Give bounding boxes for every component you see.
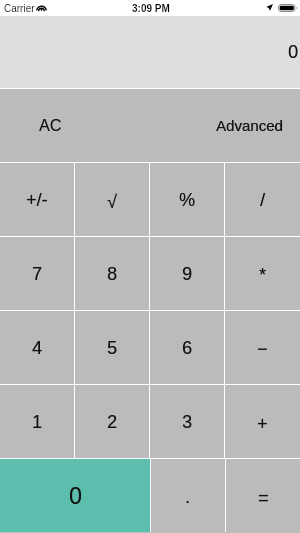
button[interactable]: %	[150, 163, 224, 236]
staticText: 0	[288, 42, 299, 62]
staticText: 6	[182, 338, 193, 358]
staticText: √	[107, 192, 117, 212]
staticText: 7	[32, 264, 43, 284]
button[interactable]: =	[226, 459, 300, 532]
staticText: Carrier	[4, 3, 35, 14]
button[interactable]: +	[225, 385, 300, 458]
button[interactable]: 3	[150, 385, 224, 458]
button[interactable]: /	[225, 163, 300, 236]
button[interactable]: −	[225, 311, 300, 384]
staticText: 5	[107, 338, 118, 358]
staticText: AC	[39, 117, 62, 135]
staticText: =	[258, 488, 269, 508]
staticText: 3	[182, 412, 193, 432]
staticText: −	[257, 339, 268, 359]
staticText: 0	[69, 483, 82, 509]
button[interactable]: +/-	[0, 163, 74, 236]
staticText: 5	[107, 338, 118, 358]
other: Wi-Fi	[36, 2, 47, 11]
staticText: 8	[107, 264, 118, 284]
button[interactable]: AC	[0, 89, 150, 162]
button[interactable]: 5	[75, 311, 149, 384]
other: Battery	[278, 4, 298, 12]
staticText: +	[257, 414, 268, 434]
staticText: *	[259, 265, 267, 285]
staticText: %	[179, 190, 196, 210]
staticText: 1	[32, 412, 43, 432]
staticText: −	[257, 339, 268, 359]
staticText: 3	[182, 412, 193, 432]
button[interactable]: √	[75, 163, 149, 236]
staticText: 1	[32, 412, 43, 432]
staticText: 6	[182, 338, 193, 358]
button[interactable]: 7	[0, 237, 74, 310]
button[interactable]: 6	[150, 311, 224, 384]
staticText: 4	[32, 338, 43, 358]
staticText: Advanced	[216, 117, 283, 134]
staticText: +/-	[26, 190, 48, 210]
staticText: 9	[182, 264, 193, 284]
staticText: %	[179, 190, 196, 210]
staticText: AC	[39, 117, 62, 135]
button[interactable]: 0	[0, 459, 150, 532]
staticText: 9	[182, 264, 193, 284]
button[interactable]: .	[151, 459, 225, 532]
staticText: 0	[288, 42, 299, 62]
staticText: 7	[32, 264, 43, 284]
staticText: .	[185, 487, 191, 507]
staticText: 2	[107, 412, 118, 432]
staticText: +/-	[26, 190, 48, 210]
other: Location	[266, 4, 273, 11]
staticText: .	[185, 487, 191, 507]
staticText: 8	[107, 264, 118, 284]
button[interactable]: 9	[150, 237, 224, 310]
button[interactable]: *	[225, 237, 300, 310]
button[interactable]: 4	[0, 311, 74, 384]
staticText: /	[260, 190, 266, 210]
button[interactable]: 8	[75, 237, 149, 310]
staticText: +	[257, 414, 268, 434]
button[interactable]: 2	[75, 385, 149, 458]
staticText: 4	[32, 338, 43, 358]
button[interactable]: Advanced	[150, 89, 300, 162]
staticText: 3:09 PM	[132, 3, 170, 14]
staticText: *	[259, 265, 267, 285]
button[interactable]: 1	[0, 385, 74, 458]
staticText: =	[258, 488, 269, 508]
staticText: 0	[69, 483, 82, 509]
staticText: Advanced	[216, 117, 283, 134]
staticText: 2	[107, 412, 118, 432]
staticText: /	[260, 190, 266, 210]
staticText: √	[107, 192, 117, 212]
